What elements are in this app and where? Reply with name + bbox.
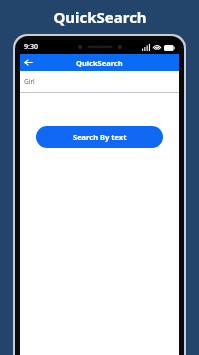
staticText: Girl — [24, 77, 35, 86]
button[interactable]: Girl — [20, 71, 179, 92]
button[interactable]: Back — [20, 54, 37, 71]
staticText: QuickSearch — [53, 7, 147, 27]
staticText: QuickSearch — [76, 58, 123, 68]
staticText: 9:30 — [24, 42, 38, 52]
staticText: Search By text — [73, 132, 127, 142]
button[interactable]: Search By text — [36, 126, 163, 148]
